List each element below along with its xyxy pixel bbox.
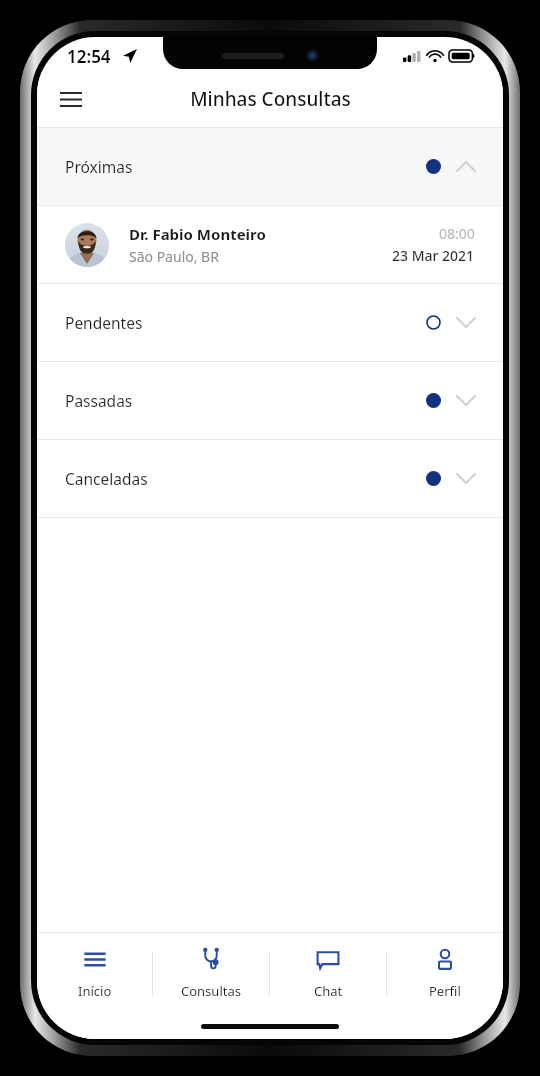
staticText: Próximas	[65, 156, 426, 177]
staticText: Minhas Consultas	[190, 86, 351, 112]
staticText: 12:54	[67, 45, 111, 68]
staticText: Início	[78, 982, 112, 1000]
staticText: Chat	[314, 982, 343, 1000]
staticText: Canceladas	[65, 468, 426, 489]
staticText: Passadas	[65, 390, 426, 411]
staticText: Perfil	[429, 982, 461, 1000]
staticText: Consultas	[181, 982, 241, 1000]
staticText: 23 Mar 2021	[392, 246, 475, 265]
button[interactable]: Consultas	[153, 933, 269, 1013]
button[interactable]: Próximas	[37, 128, 503, 205]
button[interactable]: Canceladas	[37, 440, 503, 517]
button[interactable]: Dr. Fabio Monteiro	[37, 206, 503, 283]
button[interactable]: Início	[37, 933, 152, 1013]
button[interactable]: Pendentes	[37, 284, 503, 361]
staticText: Dr. Fabio Monteiro	[129, 224, 266, 244]
button[interactable]: Chat	[270, 933, 386, 1013]
staticText: 08:00	[439, 224, 475, 243]
staticText: Pendentes	[65, 312, 426, 333]
button[interactable]: Perfil	[387, 933, 503, 1013]
staticText: São Paulo, BR	[129, 247, 219, 266]
button[interactable]: Passadas	[37, 362, 503, 439]
button[interactable]: Menu	[49, 77, 93, 121]
